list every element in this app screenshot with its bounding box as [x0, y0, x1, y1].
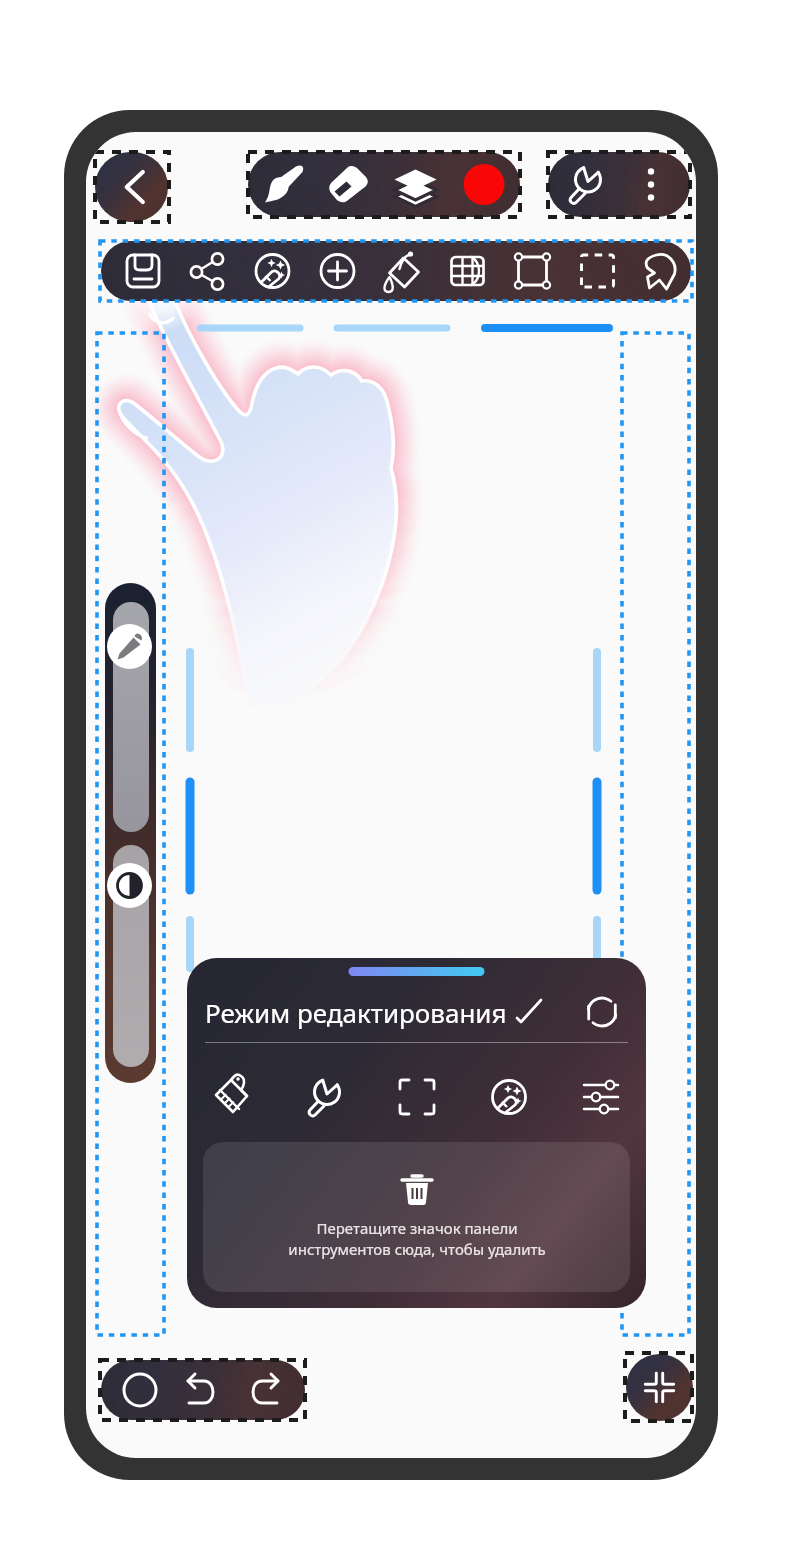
- button[interactable]: Redo: [233, 1360, 295, 1420]
- button[interactable]: Undo: [171, 1360, 233, 1420]
- button[interactable]: Grid: [435, 241, 500, 301]
- button[interactable]: Effects: [478, 1066, 540, 1128]
- button[interactable]: Magic: [240, 241, 305, 301]
- button[interactable]: More options: [616, 152, 686, 217]
- button[interactable]: Share: [175, 241, 240, 301]
- button[interactable]: Save: [111, 241, 175, 301]
- button[interactable]: Clean: [201, 1066, 263, 1128]
- button[interactable]: Select: [565, 241, 630, 301]
- button[interactable]: Drop toolbar icon here to delete: [203, 1142, 630, 1292]
- button[interactable]: Edit name: [511, 994, 547, 1030]
- button[interactable]: Eraser: [314, 152, 383, 217]
- button[interactable]: Add: [305, 241, 370, 301]
- button[interactable]: Colour: [448, 152, 520, 217]
- button[interactable]: Fullscreen: [626, 1354, 693, 1421]
- button[interactable]: Crop: [386, 1066, 448, 1128]
- button[interactable]: Adjust: [570, 1066, 632, 1128]
- staticText: Режим редактирования: [205, 995, 507, 1030]
- button[interactable]: Layers: [383, 152, 448, 217]
- button[interactable]: Lasso: [630, 241, 691, 301]
- button[interactable]: Shape: [500, 241, 565, 301]
- button[interactable]: Opacity: [107, 863, 152, 908]
- button[interactable]: Settings: [554, 152, 616, 217]
- button[interactable]: New: [109, 1360, 171, 1420]
- button[interactable]: Back: [95, 152, 168, 222]
- button[interactable]: Brush: [252, 152, 314, 217]
- button[interactable]: Fill: [370, 241, 435, 301]
- button[interactable]: Tools: [293, 1066, 355, 1128]
- staticText: Перетащите значок панели инструментов сю…: [288, 1218, 546, 1260]
- button[interactable]: Reset: [580, 990, 624, 1034]
- button[interactable]: Brush size: [107, 624, 152, 669]
